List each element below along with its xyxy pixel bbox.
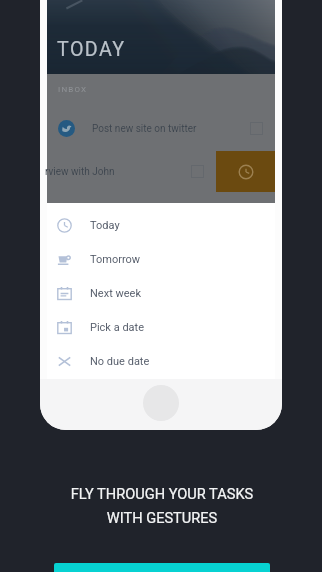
staticText: INBOX xyxy=(58,85,88,94)
button[interactable]: Post new site on twitter xyxy=(47,107,275,150)
button[interactable]: rview with John xyxy=(47,150,275,193)
staticText: Next week xyxy=(90,287,141,300)
button[interactable]: Pick a date xyxy=(47,310,275,344)
button[interactable]: No due date xyxy=(47,344,275,378)
staticText: Tomorrow xyxy=(90,253,141,266)
staticText: Post new site on twitter xyxy=(92,123,197,135)
staticText: TODAY xyxy=(57,38,126,61)
button[interactable]: Next week xyxy=(47,276,275,310)
button[interactable]: Today xyxy=(47,208,275,242)
staticText: Today xyxy=(90,219,120,232)
staticText: No due date xyxy=(90,355,150,368)
staticText: FLY THROUGH YOUR TASKS WITH GESTURES xyxy=(1,485,322,527)
staticText: Pick a date xyxy=(90,321,145,334)
staticText: rview with John xyxy=(45,166,115,178)
button[interactable]: Tomorrow xyxy=(47,242,275,276)
button[interactable]: Snooze xyxy=(216,151,275,192)
button[interactable]: Get started xyxy=(54,563,270,572)
